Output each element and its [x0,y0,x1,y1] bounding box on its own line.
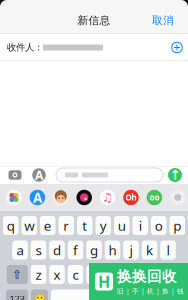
button[interactable]: d [49,240,65,259]
staticText: b [108,266,116,283]
staticText: 123 [9,293,24,300]
staticText: f [73,241,78,259]
button[interactable]: s [31,240,46,259]
staticText: 新信息 [77,14,110,27]
button[interactable]: h [105,240,120,259]
staticText: oo [149,192,159,203]
button[interactable]: return [150,289,182,300]
button[interactable]: e [40,216,55,235]
staticText: v [90,266,97,283]
button[interactable]: z [31,265,46,284]
button[interactable]: ⇧ [7,265,28,284]
staticText: 取消 [152,14,174,27]
staticText: p [173,217,181,234]
button[interactable] [51,289,147,300]
staticText: ↑ [169,167,180,182]
staticText: m [143,266,155,283]
staticText: t [82,217,87,234]
staticText: ♫ [102,191,113,204]
staticText: y [100,217,107,234]
button[interactable]: Photos [2,187,26,208]
button[interactable]: Music [96,187,119,208]
staticText: Oh [125,192,136,203]
staticText: c [72,266,78,283]
button[interactable]: App [119,187,143,208]
button[interactable]: c [68,265,83,284]
staticText: a [16,241,23,259]
staticText: A [35,167,43,183]
button[interactable]: 123 [6,289,28,300]
staticText: q [7,217,15,234]
button[interactable]: m [142,265,157,284]
button[interactable]: Memoji [49,187,72,208]
button[interactable]: k [142,240,157,259]
button[interactable]: l [160,240,176,259]
button[interactable]: 取消 [144,0,188,33]
button[interactable]: g [86,240,102,259]
button[interactable]: App [166,187,188,208]
button[interactable]: o [151,216,166,235]
staticText: l [166,241,169,259]
staticText: j [129,241,132,259]
staticText: s [35,241,41,259]
staticText: 旧 | 手 | 机 | 换 | 钱 [117,287,184,295]
button[interactable]: 🙂 [31,289,48,300]
staticText: n [127,266,135,283]
button[interactable]: Digital Touch [72,187,96,208]
staticText: u [118,217,126,234]
staticText: 🙂 [33,294,45,300]
button[interactable]: Send [166,166,184,184]
staticText: x [53,266,60,283]
button[interactable]: i [132,216,148,235]
staticText: d [53,241,61,259]
staticText: A [33,189,42,206]
button[interactable]: v [86,265,102,284]
staticText: 收件人： [7,42,43,53]
staticText: h [108,241,116,259]
button[interactable]: App [143,187,166,208]
staticText: i [139,217,142,234]
button[interactable]: b [105,265,120,284]
button[interactable]: App Store [26,166,52,184]
button[interactable]: y [95,216,111,235]
button[interactable]: t [77,216,92,235]
button[interactable]: x [49,265,65,284]
staticText: r [63,217,69,234]
button[interactable]: u [114,216,129,235]
button[interactable]: j [123,240,139,259]
staticText: H [98,271,110,292]
staticText: e [44,217,52,234]
staticText: 换换回收 [117,268,177,286]
button[interactable]: n [123,265,139,284]
button[interactable]: Camera [4,166,26,184]
button[interactable]: p [169,216,185,235]
button[interactable]: ⌫ [160,265,181,284]
staticText: return [154,294,178,300]
button[interactable]: q [3,216,18,235]
staticText: ⇧ [12,268,22,281]
button[interactable]: r [58,216,74,235]
staticText: z [35,266,41,283]
staticText: o [155,217,163,234]
staticText: ⌫ [162,268,179,281]
button[interactable]: Add contact [166,36,188,58]
staticText: k [146,241,153,259]
button[interactable]: App Store [26,187,49,208]
button[interactable]: f [68,240,83,259]
staticText: w [24,217,34,234]
staticText: g [90,241,98,259]
button[interactable]: w [21,216,37,235]
button[interactable]: a [12,240,28,259]
